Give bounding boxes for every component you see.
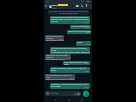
staticText: 09:12	[85, 63, 89, 65]
button[interactable]: Ok still supposed to meet you until tomo…	[45, 74, 75, 80]
staticText: 09:12	[86, 27, 90, 29]
button[interactable]: Back	[44, 4, 48, 8]
button[interactable]: Back	[52, 97, 57, 102]
button[interactable]: We ok	[76, 41, 91, 46]
staticText: Ok still supposed to meet you until tomo…	[46, 74, 75, 80]
staticText: Messages and calls are end-to-end encryp…	[48, 10, 89, 15]
staticText: 9:41	[46, 0, 50, 2]
staticText: We ok	[77, 41, 83, 44]
staticText: 09:12	[85, 87, 89, 89]
button[interactable]: Where you want to meet on Monday, the ot…	[50, 67, 90, 73]
staticText: Message	[50, 92, 59, 95]
staticText: That is pretty ok for starting, we are g…	[46, 35, 64, 41]
button[interactable]: Yes we are waiting while I have my break…	[45, 54, 71, 60]
staticText: 09:12	[66, 58, 70, 60]
staticText: 09:12	[59, 39, 63, 41]
button[interactable]: Home	[66, 97, 71, 102]
button[interactable]: Send voice message	[83, 91, 89, 97]
button[interactable]: Sorry about the message I know my phone …	[50, 16, 90, 24]
staticText: Yes we are waiting while I have my break…	[46, 54, 71, 60]
staticText: Sorry about the message I know my phone …	[51, 16, 89, 22]
staticText: 09:12	[86, 44, 90, 46]
staticText: 09:12	[85, 52, 89, 54]
button[interactable]: Message	[45, 91, 81, 96]
button[interactable]: That is pretty ok for starting, we are g…	[45, 35, 64, 41]
button[interactable]: Of course, I see you back tomorrow, have…	[50, 83, 90, 89]
button[interactable]: I got the Email and hand over documents,…	[50, 47, 90, 54]
staticText: I am just wondering	[71, 25, 89, 28]
staticText: 09:12	[85, 71, 89, 73]
staticText: Of course, I see you back tomorrow, have…	[51, 83, 89, 87]
staticText: I got the Email and hand over documents,…	[51, 47, 90, 54]
button[interactable]: Well, I will looking to it first place	[63, 61, 90, 65]
button[interactable]: More options	[85, 4, 88, 7]
staticText: 09:12	[86, 32, 90, 34]
button[interactable]: Contact photo	[49, 5, 52, 8]
staticText: What time are we to start?	[68, 30, 91, 33]
staticText: Mercy	[52, 4, 58, 7]
staticText: Where you want to meet on Monday, the ot…	[51, 67, 87, 71]
staticText: online	[52, 7, 57, 9]
staticText: Well, I will looking to it first place	[64, 61, 90, 65]
staticText: 09:12	[70, 78, 74, 80]
button[interactable]: What time are we to start?	[67, 30, 91, 34]
staticText: 09:12	[85, 22, 89, 24]
button[interactable]: Voice call	[80, 4, 84, 8]
button[interactable]: Mercy	[52, 4, 68, 9]
button[interactable]: Recent apps	[79, 97, 84, 102]
button[interactable]: I am just wondering	[70, 25, 91, 29]
button[interactable]: Video call	[75, 4, 79, 8]
